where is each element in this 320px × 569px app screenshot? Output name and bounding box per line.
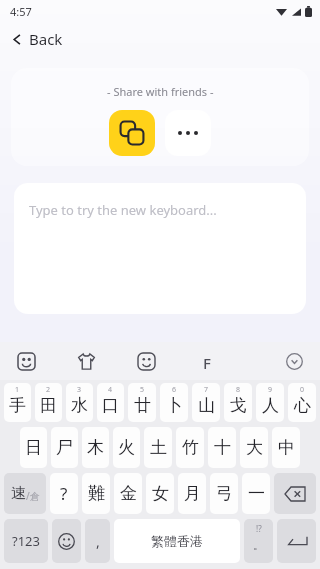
staticText: 0 [300, 385, 305, 395]
button[interactable]: !? [244, 519, 273, 563]
button[interactable]: Share [109, 110, 155, 156]
staticText: Type to try the new keyboard... [29, 201, 217, 219]
staticText: 6 [172, 385, 177, 395]
staticText: 一 [248, 483, 265, 504]
button[interactable]: 一 [242, 473, 270, 514]
staticText: 弓 [216, 483, 233, 504]
button[interactable]: 中 [272, 427, 300, 468]
button[interactable]: 大 [240, 427, 268, 468]
staticText: 手 [9, 395, 26, 416]
button[interactable]: ?123 [4, 519, 48, 563]
staticText: F [203, 353, 211, 370]
button[interactable]: More options [165, 110, 211, 156]
button[interactable]: 1 [4, 383, 31, 422]
button[interactable]: 3 [66, 383, 93, 422]
button[interactable]: , [85, 519, 110, 563]
button[interactable]: 0 [288, 383, 316, 422]
staticText: 竹 [182, 437, 199, 458]
staticText: 月 [184, 483, 201, 504]
button[interactable]: 月 [178, 473, 206, 514]
button[interactable]: 木 [82, 427, 109, 468]
button[interactable]: 竹 [176, 427, 204, 468]
button[interactable]: 尸 [51, 427, 78, 468]
staticText: 木 [87, 437, 104, 458]
staticText: 8 [236, 385, 241, 395]
staticText: 女 [152, 483, 169, 504]
staticText: 人 [262, 395, 279, 416]
staticText: ?123 [12, 532, 40, 550]
button[interactable]: 日 [20, 427, 47, 468]
staticText: 十 [214, 437, 231, 458]
staticText: 山 [198, 395, 215, 416]
button[interactable]: 6 [160, 383, 188, 422]
staticText: 難 [88, 483, 105, 504]
staticText: 5 [140, 385, 145, 395]
staticText: 繁體香港 [151, 533, 203, 549]
button[interactable]: 8 [224, 383, 252, 422]
staticText: Back [29, 29, 63, 49]
button[interactable]: 5 [128, 383, 156, 422]
staticText: 大 [246, 437, 263, 458]
staticText: 4:57 [10, 4, 32, 19]
button[interactable]: Type to try the new keyboard... [14, 183, 306, 314]
button[interactable]: 4 [97, 383, 124, 422]
staticText: 1 [15, 385, 20, 395]
staticText: 9 [268, 385, 273, 395]
button[interactable]: Emoji [52, 519, 81, 563]
button[interactable]: 金 [114, 473, 142, 514]
staticText: 7 [204, 385, 209, 395]
staticText: 速 [11, 484, 26, 503]
staticText: , [96, 532, 100, 551]
button[interactable]: Themes [74, 349, 98, 373]
button[interactable]: 7 [192, 383, 220, 422]
button[interactable]: 9 [256, 383, 284, 422]
button[interactable]: 繁體香港 [114, 519, 240, 563]
button[interactable]: 速 [4, 473, 46, 514]
staticText: 3 [77, 385, 82, 395]
staticText: ? [60, 482, 68, 505]
staticText: 尸 [56, 437, 73, 458]
button[interactable]: 2 [35, 383, 62, 422]
button[interactable]: Backspace [274, 473, 316, 514]
button[interactable]: 火 [113, 427, 140, 468]
staticText: 中 [278, 437, 295, 458]
staticText: 口 [102, 395, 119, 416]
button[interactable]: 女 [146, 473, 174, 514]
button[interactable]: Emoji [134, 349, 158, 373]
button[interactable]: Enter [277, 519, 316, 563]
staticText: 4 [108, 385, 113, 395]
staticText: 日 [25, 437, 42, 458]
button[interactable]: 難 [82, 473, 110, 514]
staticText: 土 [150, 437, 167, 458]
staticText: 廿 [134, 395, 151, 416]
staticText: 2 [46, 385, 51, 395]
button[interactable]: Back [0, 22, 320, 56]
button[interactable]: ? [50, 473, 78, 514]
button[interactable]: 弓 [210, 473, 238, 514]
button[interactable]: Collapse keyboard [282, 349, 306, 373]
staticText: 火 [118, 437, 135, 458]
staticText: 心 [294, 395, 311, 416]
staticText: 水 [71, 395, 88, 416]
button[interactable]: 土 [144, 427, 172, 468]
button[interactable]: 十 [208, 427, 236, 468]
staticText: 田 [40, 395, 57, 416]
button[interactable]: Stickers [14, 349, 38, 373]
staticText: - Share with friends - [107, 84, 214, 99]
staticText: 卜 [166, 395, 183, 416]
staticText: /倉 [26, 489, 40, 503]
button[interactable]: Font [194, 349, 218, 373]
staticText: 金 [120, 483, 137, 504]
staticText: 。 [253, 538, 264, 552]
staticText: !? [256, 523, 262, 534]
staticText: 戈 [230, 395, 247, 416]
